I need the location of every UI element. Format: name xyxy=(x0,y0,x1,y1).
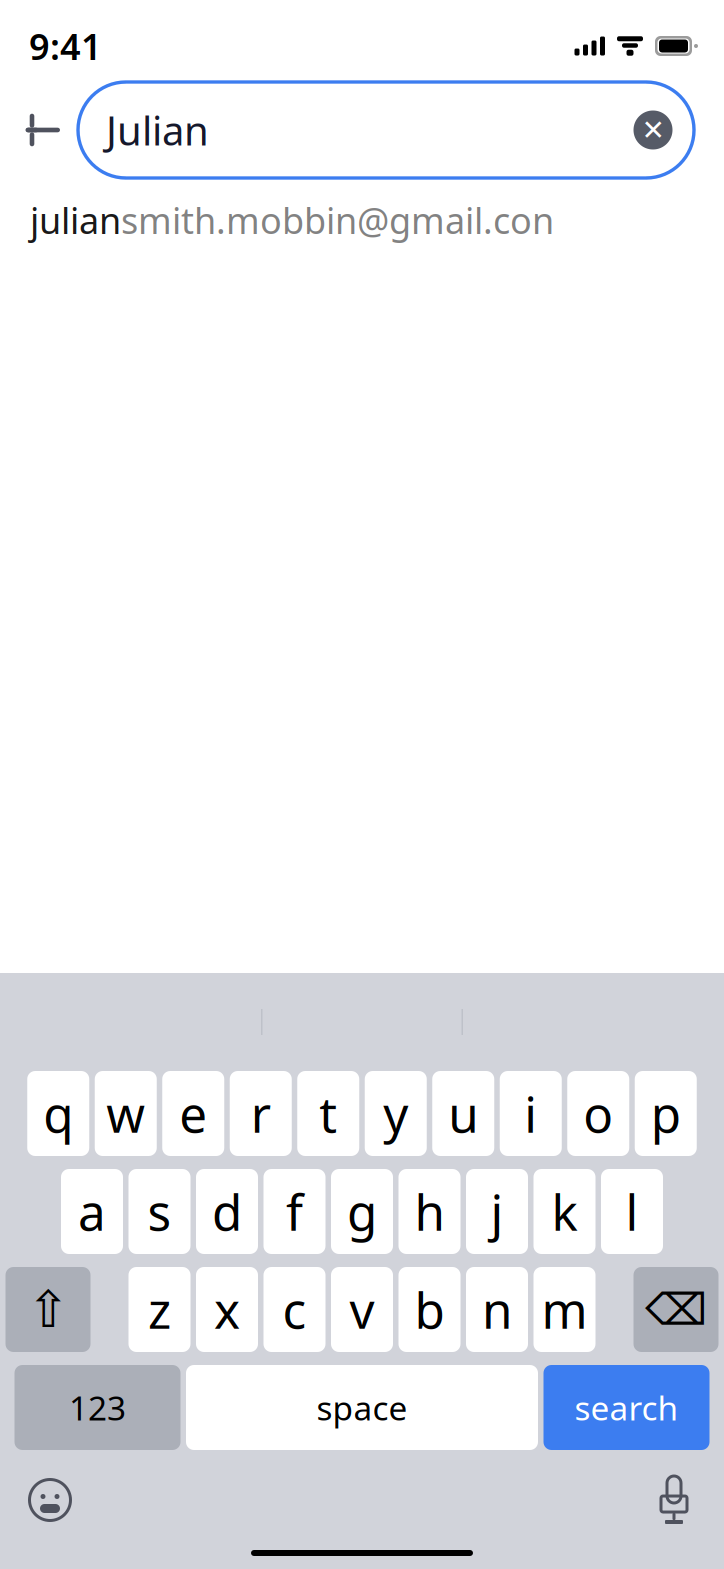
staticText: w xyxy=(106,1081,145,1146)
staticText: 123 xyxy=(69,1385,126,1430)
button[interactable]: t xyxy=(297,1071,359,1156)
button[interactable]: g xyxy=(331,1169,393,1254)
staticText: v xyxy=(349,1277,374,1342)
button[interactable]: z xyxy=(128,1267,190,1352)
button[interactable]: y xyxy=(365,1071,427,1156)
staticText: a xyxy=(78,1179,106,1244)
button[interactable]: r xyxy=(230,1071,292,1156)
button[interactable]: space xyxy=(186,1365,538,1450)
staticText: ⌫ xyxy=(645,1284,707,1334)
staticText: space xyxy=(316,1385,407,1430)
staticText: r xyxy=(251,1081,271,1146)
button[interactable]: d xyxy=(196,1169,258,1254)
staticText: smith.mobbin@gmail.con xyxy=(121,196,554,244)
button[interactable]: u xyxy=(432,1071,494,1156)
button[interactable]: l xyxy=(601,1169,663,1254)
staticText: l xyxy=(625,1179,638,1244)
staticText: f xyxy=(286,1179,303,1244)
staticText: search xyxy=(574,1385,678,1430)
button[interactable]: w xyxy=(95,1071,157,1156)
button[interactable]: k xyxy=(533,1169,595,1254)
button[interactable]: Delete xyxy=(633,1267,718,1352)
staticText: c xyxy=(282,1277,306,1342)
button[interactable]: Emoji keyboard xyxy=(14,1465,86,1535)
button[interactable]: v xyxy=(331,1267,393,1352)
staticText: d xyxy=(212,1179,242,1244)
staticText: b xyxy=(414,1277,444,1342)
button[interactable]: i xyxy=(500,1071,562,1156)
staticText: 9:41 xyxy=(29,22,102,70)
button[interactable]: julian xyxy=(0,178,724,262)
button[interactable]: b xyxy=(398,1267,460,1352)
staticText: ✕ xyxy=(641,114,664,146)
staticText: y xyxy=(383,1081,408,1146)
button[interactable]: Clear text xyxy=(625,102,681,158)
button[interactable]: q xyxy=(27,1071,89,1156)
button[interactable]: n xyxy=(466,1267,528,1352)
staticText: z xyxy=(148,1277,171,1342)
staticText: p xyxy=(651,1081,681,1146)
button[interactable]: search xyxy=(543,1365,709,1450)
staticText: q xyxy=(43,1081,73,1146)
button[interactable]: o xyxy=(567,1071,629,1156)
staticText: Julian xyxy=(106,103,209,156)
staticText: g xyxy=(347,1179,377,1244)
staticText: n xyxy=(482,1277,512,1342)
button[interactable]: e xyxy=(162,1071,224,1156)
button[interactable]: Back xyxy=(8,82,78,178)
button[interactable]: 123 xyxy=(14,1365,180,1450)
staticText: h xyxy=(414,1179,444,1244)
button[interactable]: x xyxy=(196,1267,258,1352)
button[interactable]: h xyxy=(398,1169,460,1254)
button[interactable]: s xyxy=(128,1169,190,1254)
staticText: u xyxy=(448,1081,478,1146)
button[interactable]: Dictation xyxy=(638,1465,710,1535)
staticText: k xyxy=(551,1179,577,1244)
staticText: j xyxy=(490,1179,503,1244)
staticText: o xyxy=(583,1081,613,1146)
button[interactable]: a xyxy=(61,1169,123,1254)
staticText: t xyxy=(319,1081,337,1146)
staticText: m xyxy=(541,1277,587,1342)
button[interactable]: Shift xyxy=(5,1267,90,1352)
staticText: i xyxy=(524,1081,537,1146)
staticText: ⇧ xyxy=(27,1281,69,1338)
staticText: x xyxy=(214,1277,240,1342)
button[interactable]: p xyxy=(635,1071,697,1156)
button[interactable]: c xyxy=(263,1267,325,1352)
staticText: s xyxy=(147,1179,171,1244)
staticText: e xyxy=(179,1081,207,1146)
button[interactable]: m xyxy=(533,1267,595,1352)
button[interactable]: j xyxy=(466,1169,528,1254)
button[interactable]: f xyxy=(263,1169,325,1254)
staticText: julian xyxy=(30,196,121,244)
